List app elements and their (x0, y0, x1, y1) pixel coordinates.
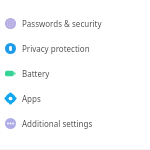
staticText: Additional settings (22, 118, 93, 129)
other: Passwords and security (5, 18, 16, 29)
other: Privacy protection (5, 43, 16, 54)
other: Battery (5, 68, 16, 79)
staticText: Privacy protection (22, 43, 90, 54)
staticText: Passwords & security (22, 18, 102, 29)
button[interactable]: Additional settings (0, 111, 150, 136)
button[interactable]: Battery (0, 61, 150, 86)
button[interactable]: Passwords and security (0, 11, 150, 36)
other: Additional settings (5, 118, 16, 129)
other: Apps (5, 93, 16, 104)
button[interactable]: Privacy protection (0, 36, 150, 61)
staticText: Battery (22, 68, 50, 79)
staticText: Apps (22, 93, 41, 104)
button[interactable]: Apps (0, 86, 150, 111)
